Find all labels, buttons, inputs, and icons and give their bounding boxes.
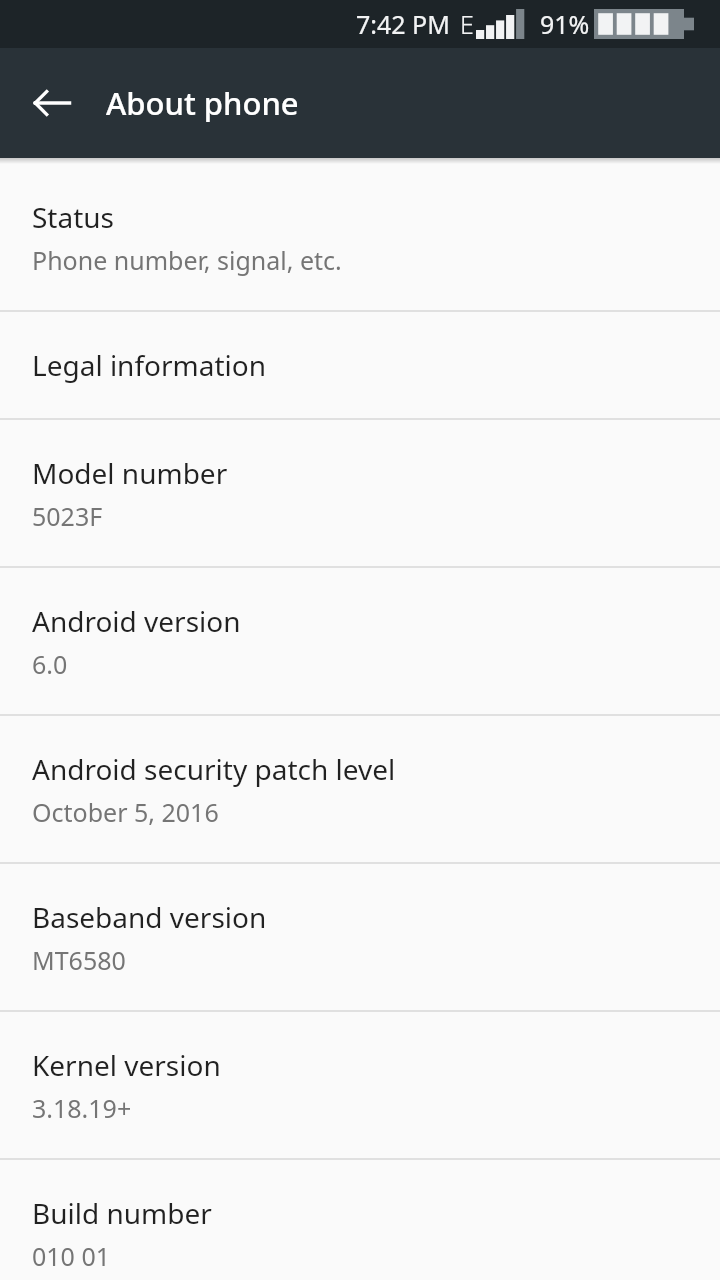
staticText: MT6580 bbox=[32, 943, 126, 977]
staticText: 010 01 bbox=[32, 1239, 111, 1273]
button[interactable]: Android version bbox=[0, 568, 720, 714]
button[interactable]: Model number bbox=[0, 420, 720, 566]
staticText: Legal information bbox=[32, 346, 267, 384]
staticText: October 5, 2016 bbox=[32, 795, 219, 829]
button[interactable]: Status bbox=[0, 164, 720, 310]
staticText: About phone bbox=[106, 82, 299, 124]
staticText: Baseband version bbox=[32, 898, 267, 936]
staticText: 91% bbox=[540, 7, 590, 41]
button[interactable]: Legal information bbox=[0, 312, 720, 418]
button[interactable]: Baseband version bbox=[0, 864, 720, 1010]
button[interactable]: Back bbox=[16, 67, 88, 139]
button[interactable]: Kernel version bbox=[0, 1012, 720, 1158]
button[interactable]: Build number bbox=[0, 1160, 720, 1280]
button[interactable]: Android security patch level bbox=[0, 716, 720, 862]
staticText: 7:42 PM bbox=[356, 7, 450, 41]
staticText: Android version bbox=[32, 602, 241, 640]
staticText: Kernel version bbox=[32, 1046, 221, 1084]
staticText: 5023F bbox=[32, 499, 103, 533]
staticText: Android security patch level bbox=[32, 750, 396, 788]
staticText: E bbox=[460, 7, 474, 41]
staticText: 3.18.19+ bbox=[32, 1091, 132, 1125]
staticText: Model number bbox=[32, 454, 228, 492]
staticText: Phone number, signal, etc. bbox=[32, 243, 342, 277]
staticText: 6.0 bbox=[32, 647, 68, 681]
staticText: Status bbox=[32, 198, 115, 236]
staticText: Build number bbox=[32, 1194, 212, 1232]
